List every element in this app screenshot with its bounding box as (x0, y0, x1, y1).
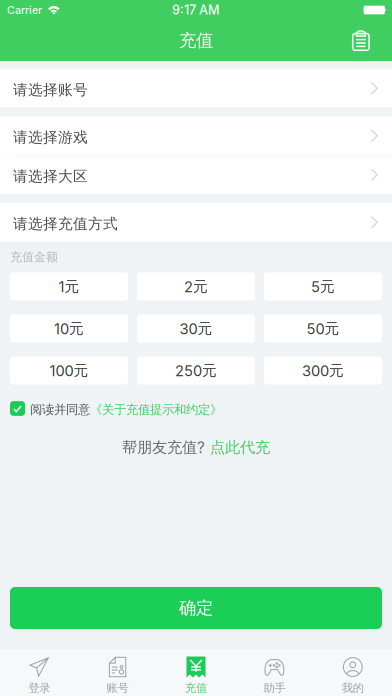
staticText: 请选择充值方式 (13, 214, 118, 233)
button[interactable]: 5元 (264, 272, 382, 300)
staticText: 请选择账号 (13, 80, 88, 99)
staticText: 50元 (306, 319, 339, 338)
button[interactable]: 登录 (0, 648, 78, 696)
button[interactable]: 确定 (10, 587, 382, 629)
staticText: 10元 (54, 319, 84, 338)
staticText: Carrier (7, 3, 42, 16)
staticText: 2元 (184, 277, 208, 296)
button[interactable]: 2元 (137, 272, 255, 300)
button[interactable]: Records (338, 20, 392, 61)
button[interactable]: 1元 (10, 272, 128, 300)
staticText: 1元 (58, 277, 79, 296)
button[interactable]: 请选择账号 (0, 69, 392, 107)
button[interactable]: 300元 (264, 356, 382, 384)
staticText: 《关于充值提示和约定》 (90, 402, 222, 417)
button[interactable]: 250元 (137, 356, 255, 384)
staticText: 帮朋友充值? (122, 438, 205, 457)
button[interactable]: 请选择大区 (0, 155, 392, 194)
button[interactable]: 请选择充值方式 (0, 203, 392, 241)
staticText: 100元 (49, 361, 88, 380)
button[interactable]: 请选择游戏 (0, 116, 392, 155)
staticText: 助手 (263, 681, 285, 695)
button[interactable]: 30元 (137, 314, 255, 342)
button[interactable]: 50元 (264, 314, 382, 342)
staticText: 30元 (179, 319, 212, 338)
button[interactable]: 账号 (78, 648, 157, 696)
button[interactable]: 阅读并同意 (0, 398, 392, 420)
button[interactable]: 助手 (235, 648, 314, 696)
staticText: 账号 (107, 681, 129, 695)
staticText: 250元 (175, 361, 217, 380)
staticText: 请选择大区 (13, 167, 88, 185)
staticText: 充值 (179, 30, 213, 51)
staticText: 5元 (311, 277, 335, 296)
button[interactable]: 充值 (157, 648, 235, 696)
button[interactable]: 我的 (314, 648, 392, 696)
button[interactable]: 100元 (10, 356, 128, 384)
button[interactable]: 点此代充 (205, 438, 270, 457)
staticText: 9:17 AM (172, 2, 220, 18)
staticText: 请选择游戏 (13, 128, 88, 146)
staticText: 登录 (28, 681, 50, 695)
staticText: 确定 (179, 597, 213, 619)
staticText: 我的 (342, 681, 364, 695)
staticText: 300元 (302, 361, 344, 380)
staticText: 充值 (185, 681, 207, 695)
staticText: 充值金额 (10, 249, 58, 264)
staticText: 阅读并同意 (30, 402, 90, 417)
staticText: 点此代充 (210, 438, 270, 457)
button[interactable]: 10元 (10, 314, 128, 342)
